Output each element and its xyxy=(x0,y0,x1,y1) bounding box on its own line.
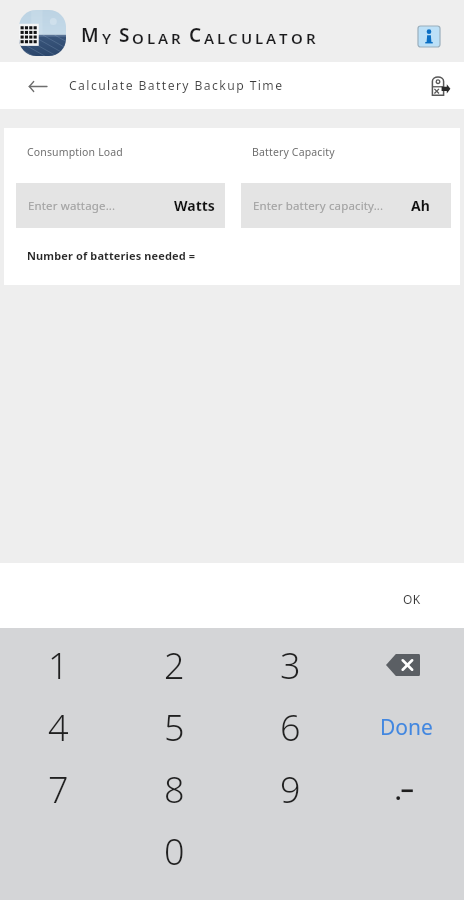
button[interactable]: Done xyxy=(348,696,464,758)
staticText: Done xyxy=(380,713,433,742)
staticText: 2 xyxy=(164,641,185,690)
staticText: 3 xyxy=(280,641,301,690)
staticText: L xyxy=(255,28,266,48)
staticText: L xyxy=(147,28,158,48)
button[interactable]: 1 xyxy=(0,634,116,696)
staticText: A xyxy=(204,28,217,48)
button[interactable]: 2 xyxy=(116,634,232,696)
staticText: R xyxy=(171,28,184,48)
staticText: 0 xyxy=(164,827,185,876)
button[interactable]: 9 xyxy=(232,758,348,820)
button[interactable]: Enter battery capacity... xyxy=(241,183,451,228)
button[interactable]: 5 xyxy=(116,696,232,758)
staticText: OK xyxy=(403,591,421,607)
button[interactable]: 4 xyxy=(0,696,116,758)
staticText: M xyxy=(81,22,102,48)
staticText: L xyxy=(217,28,228,48)
staticText: Enter battery capacity... xyxy=(253,198,384,214)
button[interactable]: 8 xyxy=(116,758,232,820)
button[interactable]: Back xyxy=(0,62,69,109)
staticText: S xyxy=(119,22,132,48)
staticText: 5 xyxy=(164,703,185,752)
staticText: 4 xyxy=(48,703,69,752)
button[interactable]: 3 xyxy=(232,634,348,696)
staticText: O xyxy=(132,28,147,48)
staticText: 1 xyxy=(48,641,69,690)
button[interactable]: Decimal or minus xyxy=(348,758,464,820)
staticText: U xyxy=(241,28,255,48)
button[interactable]: 6 xyxy=(232,696,348,758)
staticText: A xyxy=(158,28,171,48)
button[interactable]: Enter wattage... xyxy=(16,183,225,228)
staticText: A xyxy=(266,28,279,48)
button[interactable]: 7 xyxy=(0,758,116,820)
button[interactable]: Info xyxy=(404,0,464,62)
staticText: C xyxy=(189,22,204,48)
staticText: 9 xyxy=(280,765,301,814)
staticText: 8 xyxy=(164,765,185,814)
button[interactable]: Backspace xyxy=(348,634,464,696)
staticText: Y xyxy=(102,28,114,48)
button[interactable]: My Solar Calculator logo xyxy=(19,10,66,56)
staticText: Enter wattage... xyxy=(28,198,116,214)
staticText: Watts xyxy=(174,196,215,215)
staticText: O xyxy=(291,28,306,48)
staticText: R xyxy=(306,28,319,48)
staticText: Calculate Battery Backup Time xyxy=(69,77,284,94)
staticText: T xyxy=(279,28,291,48)
button[interactable]: OK xyxy=(403,591,421,607)
button[interactable]: 0 xyxy=(116,820,232,882)
staticText: 7 xyxy=(48,765,69,814)
staticText: Consumption Load xyxy=(27,145,123,159)
button[interactable]: Export xyxy=(416,62,464,109)
staticText: Number of batteries needed = xyxy=(27,248,196,263)
staticText: Ah xyxy=(411,196,430,215)
staticText: C xyxy=(228,28,241,48)
staticText: 6 xyxy=(280,703,301,752)
staticText: Battery Capacity xyxy=(252,145,335,159)
